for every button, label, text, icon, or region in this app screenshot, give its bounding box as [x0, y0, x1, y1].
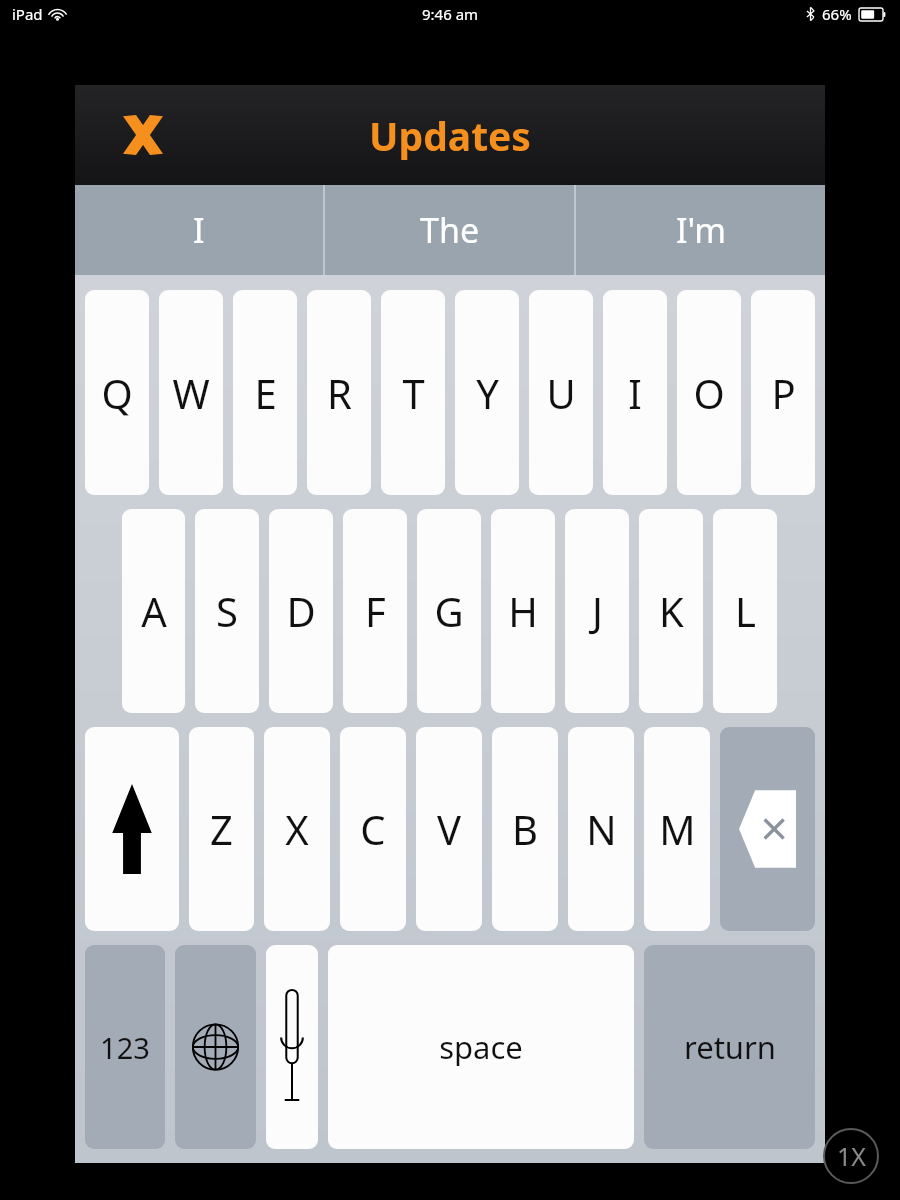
button[interactable]: Close: [115, 107, 171, 163]
staticText: Y: [476, 366, 499, 420]
button[interactable]: I: [75, 185, 323, 275]
button[interactable]: I: [603, 290, 667, 495]
staticText: R: [327, 366, 352, 420]
staticText: The: [420, 207, 480, 253]
button[interactable]: Y: [455, 290, 519, 495]
button[interactable]: 123: [85, 945, 165, 1149]
staticText: I: [628, 366, 642, 420]
button[interactable]: Delete: [720, 727, 815, 931]
staticText: P: [771, 366, 796, 420]
button[interactable]: Z: [189, 727, 254, 931]
staticText: Q: [101, 366, 133, 420]
staticText: 9:46 am: [422, 4, 479, 24]
button[interactable]: V: [416, 727, 482, 931]
staticText: G: [434, 584, 464, 638]
button[interactable]: W: [159, 290, 223, 495]
button[interactable]: F: [343, 509, 407, 713]
button[interactable]: Shift: [85, 727, 179, 931]
button[interactable]: L: [713, 509, 777, 713]
button[interactable]: 1X: [822, 1127, 880, 1185]
staticText: B: [512, 802, 538, 856]
staticText: M: [659, 802, 696, 856]
staticText: iPad: [12, 4, 43, 24]
staticText: Updates: [369, 109, 531, 162]
staticText: V: [437, 802, 461, 856]
staticText: C: [360, 802, 386, 856]
button[interactable]: R: [307, 290, 371, 495]
staticText: 66%: [822, 4, 852, 24]
button[interactable]: I'm: [576, 185, 825, 275]
staticText: I'm: [676, 207, 726, 253]
staticText: space: [439, 1026, 523, 1068]
button[interactable]: return: [644, 945, 815, 1149]
button[interactable]: U: [529, 290, 593, 495]
staticText: I: [193, 207, 205, 253]
staticText: N: [586, 802, 617, 856]
button[interactable]: B: [492, 727, 558, 931]
staticText: K: [659, 584, 684, 638]
staticText: F: [365, 584, 386, 638]
button[interactable]: Change keyboard: [175, 945, 256, 1149]
button[interactable]: S: [195, 509, 259, 713]
staticText: 123: [100, 1028, 150, 1067]
staticText: U: [546, 366, 576, 420]
staticText: E: [254, 366, 277, 420]
button[interactable]: H: [491, 509, 555, 713]
staticText: 1X: [837, 1139, 866, 1173]
staticText: A: [141, 584, 167, 638]
button[interactable]: T: [381, 290, 445, 495]
button[interactable]: K: [639, 509, 703, 713]
staticText: H: [508, 584, 538, 638]
button[interactable]: Q: [85, 290, 149, 495]
button[interactable]: G: [417, 509, 481, 713]
button[interactable]: O: [677, 290, 741, 495]
button[interactable]: space: [328, 945, 634, 1149]
button[interactable]: C: [340, 727, 406, 931]
staticText: D: [286, 584, 316, 638]
button[interactable]: J: [565, 509, 629, 713]
staticText: J: [592, 584, 603, 638]
staticText: Z: [210, 802, 233, 856]
staticText: return: [684, 1026, 776, 1068]
button[interactable]: X: [264, 727, 330, 931]
button[interactable]: A: [122, 509, 185, 713]
staticText: O: [693, 366, 725, 420]
button[interactable]: D: [269, 509, 333, 713]
staticText: X: [285, 802, 309, 856]
staticText: L: [735, 584, 756, 638]
staticText: S: [216, 584, 238, 638]
button[interactable]: Dictate: [266, 945, 318, 1149]
button[interactable]: N: [568, 727, 634, 931]
staticText: W: [172, 366, 210, 420]
button[interactable]: P: [751, 290, 815, 495]
button[interactable]: E: [233, 290, 297, 495]
button[interactable]: The: [325, 185, 574, 275]
button[interactable]: M: [644, 727, 710, 931]
staticText: T: [402, 366, 425, 420]
